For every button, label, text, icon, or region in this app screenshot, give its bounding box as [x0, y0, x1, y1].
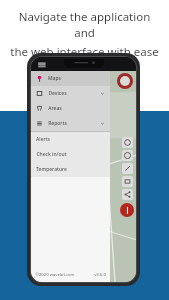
- button[interactable]: Share: [122, 189, 133, 200]
- button[interactable]: Menu: [36, 59, 48, 71]
- button[interactable]: Action: [120, 203, 134, 217]
- staticText: the web interface with ease: [10, 44, 159, 60]
- button[interactable]: Devices: [31, 86, 110, 101]
- staticText: Temperature: [36, 166, 67, 173]
- staticText: Maps: [48, 75, 61, 82]
- staticText: Alerts: [36, 136, 50, 143]
- button[interactable]: Print: [122, 176, 133, 187]
- staticText: v3.6.0: [94, 272, 106, 278]
- button[interactable]: Check in/out: [31, 147, 110, 162]
- button[interactable]: Areas: [31, 101, 110, 116]
- staticText: Navigate the application and: [8, 9, 161, 41]
- staticText: Areas: [48, 105, 62, 112]
- button[interactable]: Temperature: [31, 162, 110, 177]
- button[interactable]: Shapes: [122, 150, 133, 161]
- button[interactable]: Reports: [31, 116, 110, 131]
- staticText: Devices: [48, 90, 67, 97]
- staticText: Check in/out: [36, 151, 67, 158]
- button[interactable]: Maps: [31, 71, 110, 86]
- staticText: Reports: [48, 120, 67, 127]
- button[interactable]: Measure: [122, 163, 133, 174]
- staticText: ©2020 wavebit.com: [35, 272, 75, 278]
- button[interactable]: Layers: [122, 137, 133, 148]
- button[interactable]: Locate: [117, 73, 133, 89]
- button[interactable]: Alerts: [31, 132, 110, 147]
